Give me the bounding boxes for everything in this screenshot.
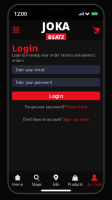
staticText: BEATZ — [48, 33, 64, 41]
button[interactable]: Home — [8, 173, 27, 187]
staticText: Login — [12, 42, 38, 54]
button[interactable]: Forgot your password? — [12, 104, 100, 110]
button[interactable]: Don't have an account? — [12, 116, 100, 122]
button[interactable]: Shops — [27, 173, 46, 187]
staticText: Login — [49, 92, 63, 99]
staticText: Enter your password — [15, 80, 51, 85]
staticText: Login to manage your order history and a… — [12, 52, 95, 63]
button[interactable]: Login — [12, 91, 100, 100]
staticText: Products — [68, 181, 83, 187]
staticText: Info — [53, 181, 59, 187]
staticText: Sign up here — [63, 116, 89, 122]
staticText: Account — [87, 181, 101, 187]
button[interactable]: Cart — [88, 20, 104, 40]
staticText: Reset here — [66, 104, 87, 109]
staticText: Home — [12, 181, 23, 187]
button[interactable]: Products — [66, 173, 85, 187]
staticText: Shops — [32, 181, 42, 187]
staticText: Don't have an account? — [23, 116, 62, 122]
button[interactable]: Account — [85, 173, 104, 187]
button[interactable]: Menu — [8, 20, 24, 40]
button[interactable]: Info — [46, 173, 66, 187]
staticText: 12:00 — [14, 10, 27, 17]
staticText: Enter your email — [15, 67, 44, 72]
staticText: Forgot your password? — [25, 104, 65, 109]
staticText: JOKA — [42, 19, 70, 33]
